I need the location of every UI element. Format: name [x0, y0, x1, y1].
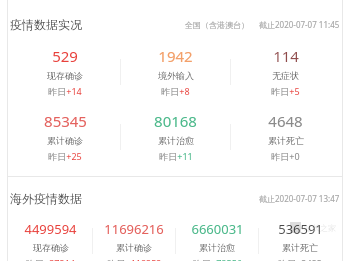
staticText: 昨日+25 [48, 150, 82, 162]
staticText: 536591 [278, 220, 323, 238]
staticText: 累计治愈 [158, 135, 194, 146]
staticText: 无症状 [272, 70, 299, 81]
staticText: 529 [52, 46, 78, 66]
staticText: 累计确诊 [116, 242, 152, 253]
button[interactable]: 114 [231, 46, 340, 97]
staticText: 昨日+8 [161, 85, 190, 97]
button[interactable]: 85345 [10, 111, 120, 162]
button[interactable]: 4499594 [9, 220, 92, 261]
staticText: 站长之家 [304, 223, 336, 233]
staticText: 85345 [44, 111, 87, 131]
staticText: 截止2020-07-07 11:45 [259, 19, 340, 30]
staticText: 累计死亡 [282, 242, 318, 253]
button[interactable]: 529 [10, 46, 120, 97]
button[interactable]: 1942 [121, 46, 230, 97]
button[interactable]: 80168 [121, 111, 230, 162]
staticText: 累计确诊 [47, 135, 83, 146]
staticText: 6660031 [191, 220, 244, 238]
button[interactable]: 4648 [231, 111, 340, 162]
staticText: 累计治愈 [199, 242, 235, 253]
staticText: 昨日+0 [271, 150, 300, 162]
staticText: 累计死亡 [268, 135, 304, 146]
button[interactable]: 11696216 [93, 220, 175, 261]
staticText: 4648 [268, 111, 303, 131]
staticText: 4499594 [24, 220, 77, 238]
staticText: 1942 [158, 46, 193, 66]
staticText: 114 [273, 46, 299, 66]
button[interactable]: 海外疫情数据 [10, 191, 340, 206]
staticText: 11696216 [104, 220, 164, 238]
staticText: 昨日+37214 [26, 257, 75, 261]
button[interactable]: 536591 [259, 220, 341, 261]
staticText: 疫情数据实况 [10, 17, 82, 32]
staticText: 海外疫情数据 [10, 191, 82, 206]
staticText: 昨日+11 [159, 150, 193, 162]
staticText: 境外输入 [158, 70, 194, 81]
staticText: 全国（含港澳台） [185, 20, 249, 30]
staticText: 昨日+78556 [193, 257, 242, 261]
staticText: 昨日+2482 [278, 257, 322, 261]
button[interactable]: 疫情数据实况 [10, 17, 340, 32]
staticText: 现存确诊 [33, 242, 69, 253]
button[interactable]: 6660031 [176, 220, 258, 261]
staticText: 昨日+5 [271, 85, 300, 97]
staticText: 昨日+118252 [107, 257, 162, 261]
staticText: 截止2020-07-07 13:47 [259, 193, 340, 204]
staticText: 昨日+14 [48, 85, 82, 97]
staticText: 80168 [154, 111, 197, 131]
staticText: 现存确诊 [47, 70, 83, 81]
